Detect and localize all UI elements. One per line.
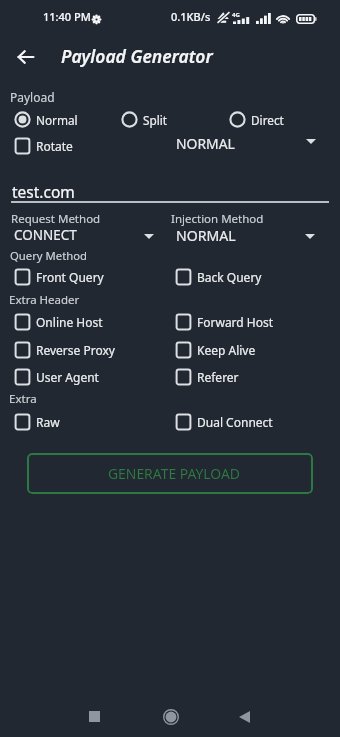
button[interactable]: User Agent [14,368,99,386]
button[interactable]: Reverse Proxy [14,341,115,359]
staticText: Direct [251,112,284,128]
staticText: Extra [9,391,37,407]
staticText: Request Method [11,211,101,227]
staticText: Raw [36,414,60,430]
staticText: CONNECT [14,226,77,242]
staticText: Injection Method [171,211,264,227]
button[interactable]: Back Query [175,268,262,286]
staticText: Normal [36,112,78,128]
button[interactable]: NORMAL [176,226,315,242]
button[interactable]: Direct [229,111,284,128]
button[interactable]: Split [121,111,168,128]
staticText: Forward Host [197,314,274,330]
button[interactable]: Home [150,696,191,737]
staticText: NORMAL [176,226,236,242]
staticText: 11:40 PM [43,9,91,24]
staticText: Front Query [36,269,104,285]
button[interactable]: Recent apps [74,696,115,737]
staticText: Referer [197,369,239,385]
button[interactable]: Rotate [14,137,73,155]
staticText: Keep Alive [197,342,256,358]
button[interactable]: Front Query [14,268,104,286]
button[interactable]: Forward Host [175,313,274,331]
staticText: 0.1KB/s [171,9,211,24]
button[interactable]: Back [224,696,265,737]
button[interactable]: Raw [14,413,60,431]
staticText: Back Query [197,269,262,285]
button[interactable]: Keep Alive [175,341,256,359]
staticText: 4G [232,11,240,19]
button[interactable]: Dual Connect [175,413,273,431]
button[interactable]: GENERATE PAYLOAD [27,453,313,494]
staticText: Online Host [36,314,103,330]
staticText: Extra Header [9,292,80,308]
staticText: GENERATE PAYLOAD [108,464,240,483]
staticText: Dual Connect [197,414,273,430]
button[interactable]: NORMAL [176,134,320,152]
staticText: Split [143,112,168,128]
staticText: Rotate [36,138,73,154]
button[interactable]: Normal [14,111,78,128]
staticText: test.com [12,181,75,202]
button[interactable]: Back [12,44,38,70]
staticText: NORMAL [176,134,235,152]
staticText: Reverse Proxy [36,342,115,358]
button[interactable]: Online Host [14,313,103,331]
staticText: Payload [10,89,55,105]
staticText: User Agent [36,369,99,385]
button[interactable]: Referer [175,368,239,386]
staticText: Payload Generator [61,44,213,68]
button[interactable]: CONNECT [14,226,154,242]
staticText: Query Method [10,248,88,263]
